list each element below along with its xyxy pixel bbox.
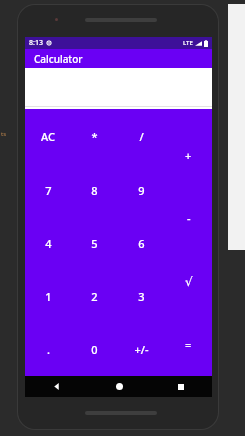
staticText: 8 [91, 183, 98, 198]
button[interactable]: . [25, 323, 71, 376]
button[interactable]: √ [165, 250, 212, 313]
button[interactable]: 5 [71, 217, 118, 270]
button[interactable]: 9 [118, 163, 165, 217]
staticText: + [185, 148, 192, 163]
staticText: 8:13 [29, 38, 43, 48]
staticText: 2 [91, 289, 98, 304]
staticText: 3 [138, 289, 145, 304]
button[interactable]: 3 [118, 270, 165, 323]
button[interactable]: Back [25, 376, 88, 397]
button[interactable]: 8 [71, 163, 118, 217]
staticText: +/- [134, 342, 149, 357]
button[interactable]: AC [25, 109, 71, 163]
button[interactable]: + [165, 123, 212, 187]
staticText: 0 [91, 342, 98, 357]
staticText: LTE [183, 39, 193, 47]
staticText: . [47, 342, 50, 357]
staticText: * [91, 129, 98, 144]
staticText: / [139, 129, 144, 144]
button[interactable]: / [118, 109, 165, 163]
button[interactable]: Calculator [25, 49, 212, 68]
staticText: ts [1, 130, 7, 138]
button[interactable]: 2 [71, 270, 118, 323]
button[interactable]: 7 [25, 163, 71, 217]
button[interactable]: Home [88, 376, 150, 397]
button[interactable]: +/- [118, 323, 165, 376]
button[interactable]: 1 [25, 270, 71, 323]
button[interactable]: - [165, 187, 212, 250]
staticText: 4 [45, 236, 52, 251]
staticText: 5 [91, 236, 98, 251]
staticText: 1 [45, 289, 52, 304]
button[interactable]: = [165, 313, 212, 376]
staticText: 9 [138, 183, 145, 198]
button[interactable]: Recent apps [150, 376, 212, 397]
staticText: - [187, 211, 191, 226]
staticText: 6 [138, 236, 145, 251]
staticText: Calculator [34, 52, 83, 66]
button[interactable]: 0 [71, 323, 118, 376]
staticText: = [185, 337, 192, 352]
button[interactable]: * [71, 109, 118, 163]
staticText: 7 [45, 183, 52, 198]
button[interactable]: 4 [25, 217, 71, 270]
button[interactable]: 6 [118, 217, 165, 270]
staticText: √ [185, 275, 193, 289]
staticText: AC [41, 129, 55, 144]
